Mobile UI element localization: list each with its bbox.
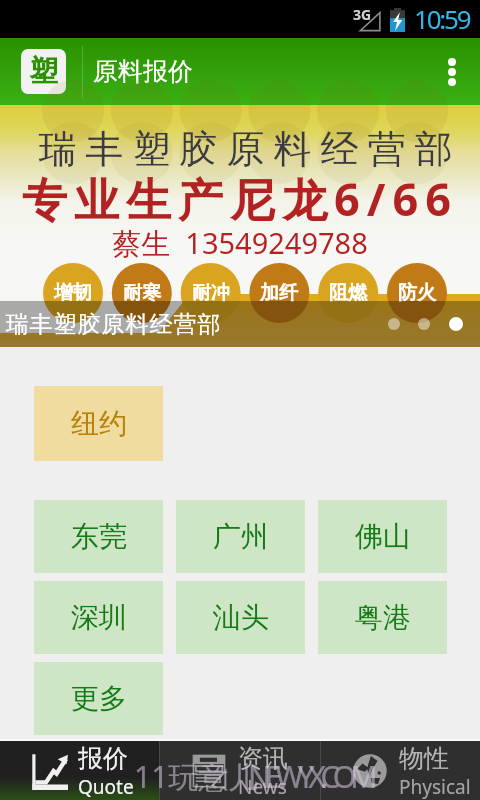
button[interactable]: 纽约 (34, 386, 163, 461)
staticText: Physical (399, 774, 471, 800)
button[interactable]: 深圳 (34, 581, 163, 654)
staticText: 3G (353, 5, 372, 24)
staticText: 原料报价 (93, 56, 193, 87)
button[interactable]: 汕头 (176, 581, 305, 654)
staticText: Quote (78, 774, 134, 800)
staticText: 瑞丰塑胶原料经营部 (34, 125, 457, 173)
staticText: 瑞丰塑胶原料经营部 (5, 310, 221, 339)
button[interactable]: 佛山 (318, 500, 447, 573)
staticText: 广州 (213, 519, 269, 554)
staticText: 加纤 (260, 281, 298, 305)
staticText: 东莞 (71, 519, 127, 554)
button[interactable]: 粤港 (318, 581, 447, 654)
button[interactable]: 东莞 (34, 500, 163, 573)
staticText: 粤港 (355, 600, 411, 635)
button[interactable]: 更多 (34, 662, 163, 735)
staticText: 阻燃 (329, 281, 367, 305)
staticText: 资讯 (238, 743, 288, 774)
staticText: 物性 (399, 743, 449, 774)
staticText: News (238, 774, 287, 800)
staticText: 深圳 (71, 600, 127, 635)
staticText: 专业生产尼龙6/66 (22, 168, 458, 229)
staticText: 10:59 (414, 1, 470, 36)
staticText: 更多 (71, 681, 127, 716)
staticText: NEWYX.COM (248, 756, 372, 797)
staticText: 报价 (78, 743, 128, 774)
staticText: 佛山 (355, 519, 411, 554)
button[interactable]: 资讯 (160, 741, 320, 800)
button[interactable]: 广州 (176, 500, 305, 573)
staticText: 耐冲 (192, 281, 230, 305)
button[interactable]: 报价 (0, 741, 159, 800)
staticText: 增韧 (54, 281, 92, 305)
staticText: 蔡生 13549249788 (112, 223, 368, 263)
staticText: 11玩意儿 (134, 756, 259, 797)
staticText: 耐寒 (123, 281, 161, 305)
button[interactable]: 物性 (321, 741, 480, 800)
button[interactable]: More options (424, 38, 480, 105)
staticText: 纽约 (71, 406, 127, 441)
staticText: 防火 (398, 281, 436, 305)
staticText: 塑 (29, 53, 58, 90)
staticText: 汕头 (213, 600, 269, 635)
